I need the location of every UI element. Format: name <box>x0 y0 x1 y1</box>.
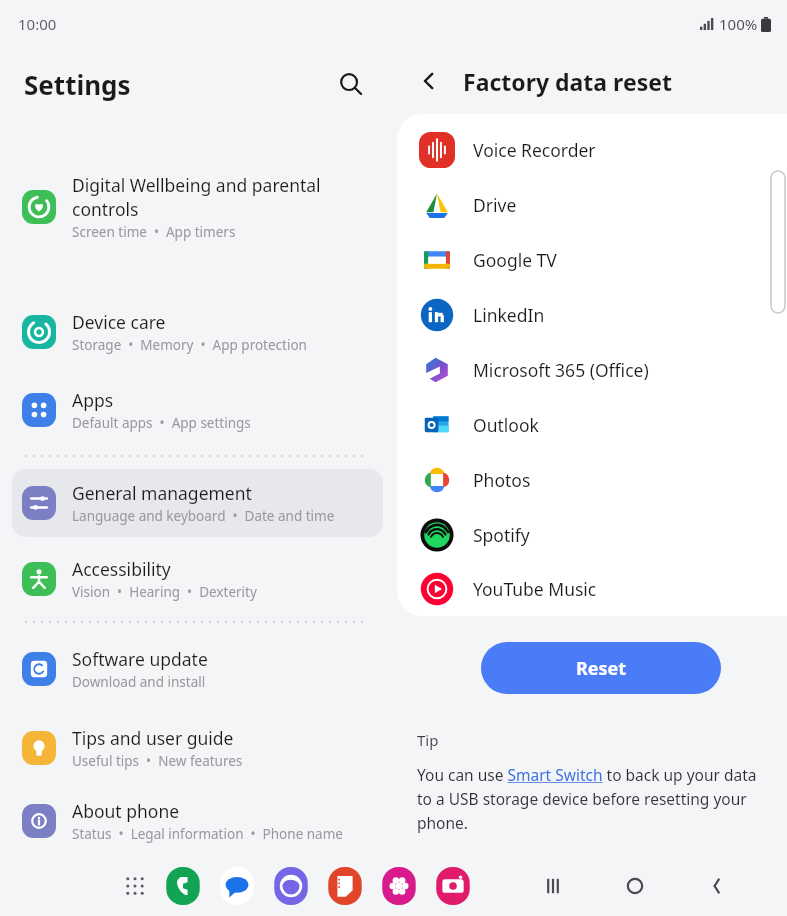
staticText: YouTube Music <box>473 577 597 601</box>
button[interactable]: Drive <box>397 177 787 232</box>
staticText: Photos <box>473 468 531 492</box>
staticText: Storage • Memory • App protection <box>72 336 307 354</box>
button[interactable]: Phone <box>156 859 210 913</box>
button[interactable]: LinkedIn <box>397 287 787 342</box>
button[interactable]: About phone <box>0 787 395 855</box>
staticText: Spotify <box>473 523 530 547</box>
staticText: Tips and user guide <box>72 726 234 750</box>
staticText: General management <box>72 481 252 505</box>
staticText: Tip <box>417 730 439 750</box>
button[interactable]: Microsoft 365 (Office) <box>397 342 787 397</box>
button[interactable]: Messages <box>210 859 264 913</box>
button[interactable]: Home <box>594 855 676 916</box>
button[interactable]: Back <box>676 855 758 916</box>
staticText: Default apps • App settings <box>72 414 251 432</box>
button[interactable]: Back <box>409 61 449 101</box>
staticText: Download and install <box>72 673 206 691</box>
button[interactable]: Device care <box>0 293 395 371</box>
staticText: 100% <box>719 14 758 34</box>
staticText: Vision • Hearing • Dexterity <box>72 583 257 601</box>
button[interactable]: Software update <box>0 629 395 709</box>
staticText: About phone <box>72 799 180 823</box>
staticText: Device care <box>72 310 166 334</box>
staticText: Outlook <box>473 413 539 437</box>
button[interactable]: Spotify <box>397 507 787 562</box>
staticText: Accessibility <box>72 557 171 581</box>
button[interactable]: Internet <box>264 859 318 913</box>
staticText: Apps <box>72 388 114 412</box>
button[interactable]: Photos <box>397 452 787 507</box>
button[interactable]: All apps <box>114 865 156 907</box>
staticText: Reset <box>576 656 627 681</box>
button[interactable]: Digital Wellbeing and parental controls <box>0 120 395 293</box>
button[interactable]: YouTube Music <box>397 562 787 616</box>
button[interactable]: Camera <box>426 859 480 913</box>
staticText: 10:00 <box>18 14 57 34</box>
staticText: Google TV <box>473 248 557 272</box>
button[interactable]: Accessibility <box>0 543 395 615</box>
button[interactable]: Recents <box>512 855 594 916</box>
button[interactable]: Apps <box>0 371 395 449</box>
button[interactable]: Reset <box>481 642 721 694</box>
staticText: You can use Smart Switch to back up your… <box>417 764 763 833</box>
staticText: Factory data reset <box>463 66 672 97</box>
staticText: Digital Wellbeing and parental controls <box>72 173 321 221</box>
staticText: Status • Legal information • Phone name <box>72 825 343 843</box>
button[interactable]: Voice Recorder <box>397 122 787 177</box>
staticText: Microsoft 365 (Office) <box>473 358 649 382</box>
staticText: Useful tips • New features <box>72 752 243 770</box>
button[interactable]: Google TV <box>397 232 787 287</box>
staticText: Screen time • App timers <box>72 223 236 241</box>
staticText: Settings <box>24 67 131 102</box>
staticText: Language and keyboard • Date and time <box>72 507 335 525</box>
staticText: LinkedIn <box>473 303 545 327</box>
button[interactable]: Outlook <box>397 397 787 452</box>
button[interactable]: Gallery <box>372 859 426 913</box>
button[interactable]: Tips and user guide <box>0 709 395 787</box>
staticText: Voice Recorder <box>473 138 596 162</box>
staticText: Software update <box>72 647 208 671</box>
button[interactable]: General management <box>12 469 383 537</box>
button[interactable]: Search <box>331 64 371 104</box>
staticText: Drive <box>473 193 517 217</box>
button[interactable]: Samsung Notes <box>318 859 372 913</box>
